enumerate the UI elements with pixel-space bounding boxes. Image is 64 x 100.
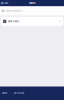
- button[interactable]: Any Format: [9, 86, 26, 100]
- staticText: Type in keywords: [5, 10, 21, 12]
- staticText: Search: [29, 2, 35, 4]
- button[interactable]: Back: [0, 0, 9, 6]
- staticText: Back: [3, 2, 8, 5]
- button[interactable]: Cancel: [0, 86, 9, 100]
- button[interactable]: Book Name: [0, 17, 64, 26]
- button[interactable]: Type in keywords: [0, 6, 64, 16]
- staticText: Any Format: [14, 92, 25, 94]
- staticText: Cancel: [2, 92, 7, 94]
- staticText: Book Name: [8, 20, 19, 23]
